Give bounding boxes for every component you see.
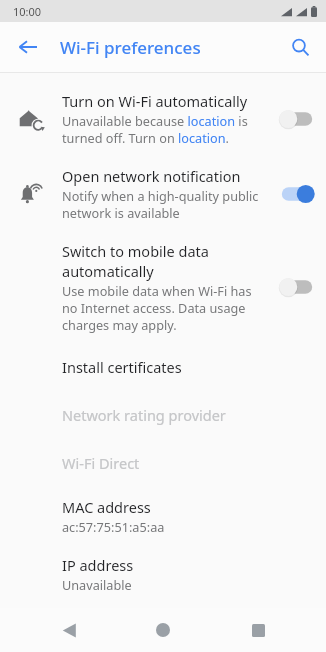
staticText: Turn on Wi-Fi automatically: [62, 91, 248, 111]
button[interactable]: Search: [282, 29, 318, 65]
button[interactable]: On: [268, 183, 326, 205]
button[interactable]: Install certificates: [0, 343, 326, 391]
staticText: Unavailable: [62, 576, 132, 593]
staticText: Use mobile data when Wi-Fi has: [62, 282, 252, 299]
staticText: Install certificates: [62, 357, 182, 377]
button[interactable]: Network rating provider: [0, 391, 326, 439]
staticText: turned off. Turn on location.: [62, 129, 229, 146]
button[interactable]: MAC address: [0, 487, 326, 545]
button[interactable]: Back: [10, 29, 46, 65]
button[interactable]: IP address: [0, 545, 326, 603]
staticText: automatically: [62, 261, 154, 281]
button[interactable]: Off: [268, 108, 326, 130]
staticText: network is available: [62, 204, 180, 221]
button[interactable]: Back: [43, 608, 95, 652]
staticText: ac:57:75:51:a5:aa: [62, 518, 165, 535]
staticText: IP address: [62, 555, 134, 575]
staticText: Wi-Fi Direct: [62, 453, 140, 473]
button[interactable]: Recent apps: [232, 608, 284, 652]
staticText: Wi-Fi preferences: [60, 36, 201, 59]
button[interactable]: Home: [137, 608, 189, 652]
staticText: 10:00: [13, 4, 42, 19]
staticText: Notify when a high-quality public: [62, 187, 259, 204]
staticText: Network rating provider: [62, 405, 226, 425]
button[interactable]: Switch to mobile data: [0, 231, 326, 343]
staticText: MAC address: [62, 497, 151, 517]
staticText: Open network notification: [62, 166, 241, 186]
staticText: Unavailable because location is: [62, 112, 248, 129]
button[interactable]: Wi-Fi Direct: [0, 439, 326, 487]
staticText: Switch to mobile data: [62, 241, 209, 261]
button[interactable]: Open network notification: [0, 156, 326, 231]
button[interactable]: Off: [268, 276, 326, 298]
staticText: no Internet access. Data usage: [62, 299, 246, 316]
button[interactable]: Turn on Wi-Fi automatically: [0, 81, 326, 156]
staticText: charges may apply.: [62, 316, 177, 333]
